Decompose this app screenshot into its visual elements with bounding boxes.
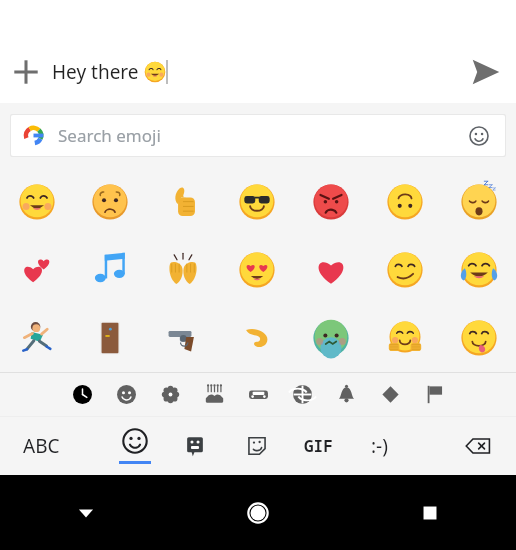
button[interactable] [294, 304, 368, 372]
button[interactable]: Nature [148, 373, 192, 416]
button[interactable]: Emoji keyboard [459, 116, 499, 156]
button[interactable]: Hide keyboard [0, 475, 172, 550]
button[interactable] [146, 167, 220, 236]
button[interactable]: Add attachment [0, 46, 52, 98]
button[interactable]: Search emoji [11, 115, 505, 156]
button[interactable] [368, 236, 442, 304]
button[interactable] [0, 304, 73, 372]
button[interactable]: Flags [412, 373, 456, 416]
button[interactable]: Food [192, 373, 236, 416]
button[interactable] [146, 236, 220, 304]
button[interactable]: Symbols [368, 373, 412, 416]
button[interactable]: GIF [294, 417, 342, 475]
button[interactable]: Backspace [452, 417, 504, 475]
button[interactable]: ABC [14, 417, 68, 475]
button[interactable] [220, 304, 294, 372]
button[interactable]: Smileys [104, 373, 148, 416]
button[interactable] [442, 236, 516, 304]
button[interactable]: Recent [60, 373, 104, 416]
button[interactable] [220, 236, 294, 304]
button[interactable]: Emoji [109, 417, 161, 475]
button[interactable] [0, 167, 73, 236]
button[interactable]: Hey there [52, 59, 454, 85]
button[interactable] [0, 236, 73, 304]
staticText: ABC [23, 433, 60, 459]
button[interactable] [146, 304, 220, 372]
button[interactable] [294, 167, 368, 236]
button[interactable]: Send [454, 41, 516, 103]
staticText: Search emoji [58, 124, 459, 147]
button[interactable]: Bitmoji [171, 417, 219, 475]
button[interactable]: Stickers [233, 417, 281, 475]
staticText: Hey there [52, 59, 144, 85]
button[interactable] [73, 167, 146, 236]
button[interactable] [73, 236, 146, 304]
staticText: :-) [371, 433, 388, 459]
button[interactable]: :-) [355, 417, 403, 475]
button[interactable]: Travel [236, 373, 280, 416]
button[interactable] [442, 304, 516, 372]
button[interactable] [73, 304, 146, 372]
button[interactable] [368, 167, 442, 236]
staticText: GIF [304, 435, 333, 457]
button[interactable] [220, 167, 294, 236]
button[interactable]: Objects [324, 373, 368, 416]
button[interactable]: Recent apps [344, 475, 516, 550]
button[interactable] [368, 304, 442, 372]
button[interactable] [442, 167, 516, 236]
button[interactable]: Activities [280, 373, 324, 416]
button[interactable]: Home [172, 475, 344, 550]
button[interactable] [294, 236, 368, 304]
